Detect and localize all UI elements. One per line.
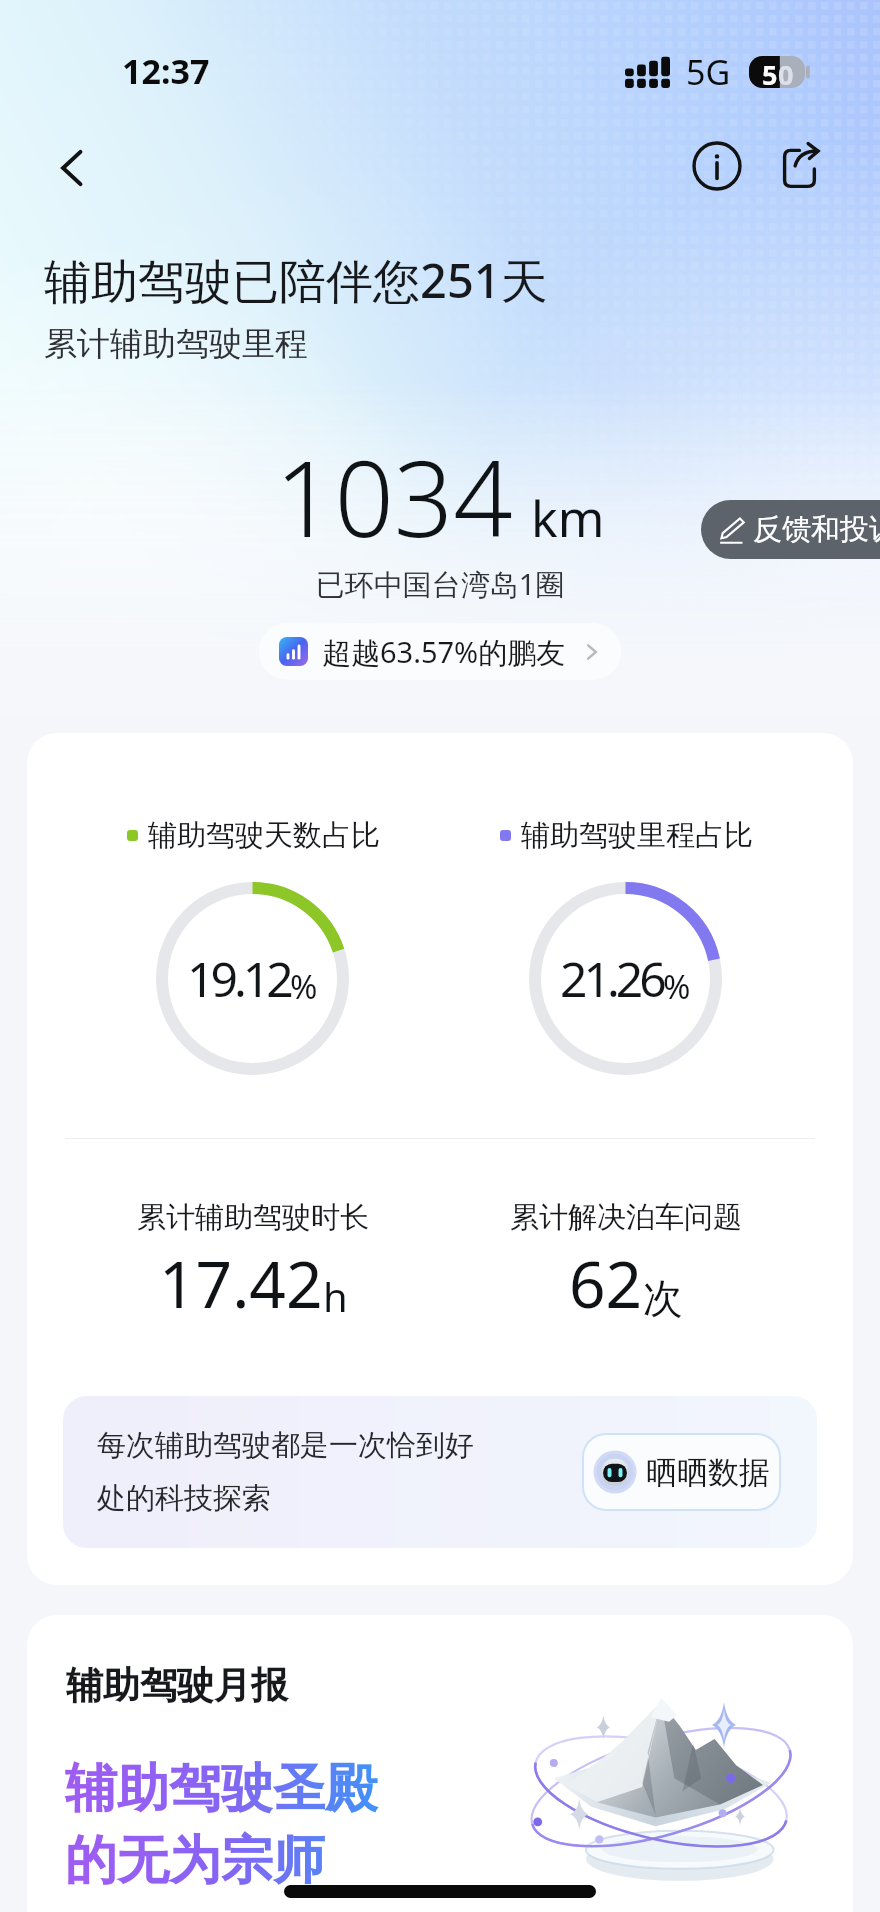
staticText: 5 — [762, 56, 778, 88]
staticText: km — [531, 484, 605, 552]
staticText: 19.12 — [187, 946, 290, 1011]
button[interactable]: Info — [686, 135, 748, 197]
staticText: 次 — [643, 1273, 683, 1323]
staticText: 累计解决泊车问题 — [510, 1199, 742, 1236]
staticText: 晒晒数据 — [646, 1453, 770, 1492]
staticText: 1034 — [275, 426, 513, 568]
staticText: 反馈和投诉 — [753, 511, 880, 548]
staticText: % — [290, 964, 318, 1009]
staticText: 超越63.57%的鹏友 — [322, 632, 566, 672]
staticText: 0 — [778, 56, 794, 88]
staticText: 12:37 — [122, 48, 210, 94]
button[interactable]: 晒晒数据 — [584, 1435, 779, 1509]
button[interactable]: 反馈和投诉 — [701, 500, 880, 559]
staticText: 5G — [686, 49, 731, 95]
staticText: 累计辅助驾驶时长 — [137, 1199, 369, 1236]
staticText: 辅助驾驶已陪伴您251天 — [44, 248, 548, 312]
staticText: h — [323, 1269, 348, 1323]
staticText: 21.26 — [560, 946, 663, 1011]
staticText: % — [663, 964, 691, 1009]
button[interactable]: Back — [42, 137, 104, 199]
staticText: 辅助驾驶月报 — [66, 1662, 288, 1709]
staticText: 每次辅助驾驶都是一次恰到好 — [97, 1427, 474, 1464]
staticText: 辅助驾驶里程占比 — [521, 817, 753, 854]
button[interactable]: Share — [766, 138, 828, 200]
staticText: 辅助驾驶圣殿 的无为宗师 — [65, 1756, 377, 1893]
staticText: 62 — [569, 1240, 643, 1327]
staticText: 已环中国台湾岛1圈 — [0, 564, 880, 604]
button[interactable]: 超越63.57%的鹏友 — [259, 623, 621, 680]
staticText: 17.42 — [159, 1240, 323, 1327]
staticText: 处的科技探索 — [97, 1480, 271, 1517]
staticText: 辅助驾驶天数占比 — [148, 817, 380, 854]
staticText: 累计辅助驾驶里程 — [44, 323, 308, 365]
